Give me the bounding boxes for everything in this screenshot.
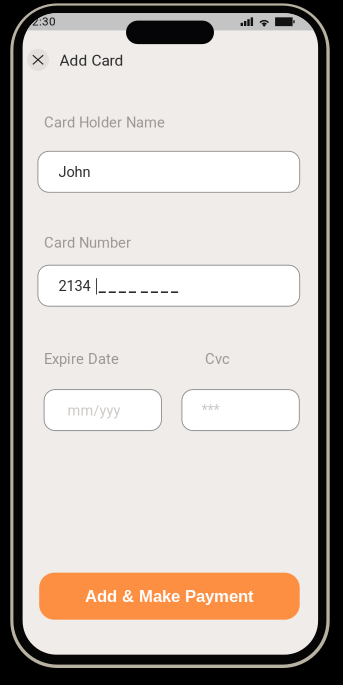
staticText: mm/yyy [68,402,121,419]
staticText: John [58,163,90,180]
staticText: Card Holder Name [44,114,165,131]
staticText: Add Card [59,51,123,69]
staticText: 2:30 [32,15,56,28]
staticText: Cvc [205,350,230,367]
staticText: Add & Make Payment [85,587,254,605]
button[interactable]: John [38,151,300,192]
button[interactable]: 2134 [38,265,300,306]
button[interactable]: Close [27,49,49,71]
button[interactable]: *** [182,390,299,431]
staticText: Card Number [44,234,131,251]
button[interactable]: Add Card [59,51,123,69]
button[interactable]: mm/yyy [44,390,161,431]
staticText: *** [202,402,220,419]
staticText: Expire Date [44,350,119,367]
staticText: 2134 [58,278,90,295]
button[interactable]: Add & Make Payment [39,573,300,620]
